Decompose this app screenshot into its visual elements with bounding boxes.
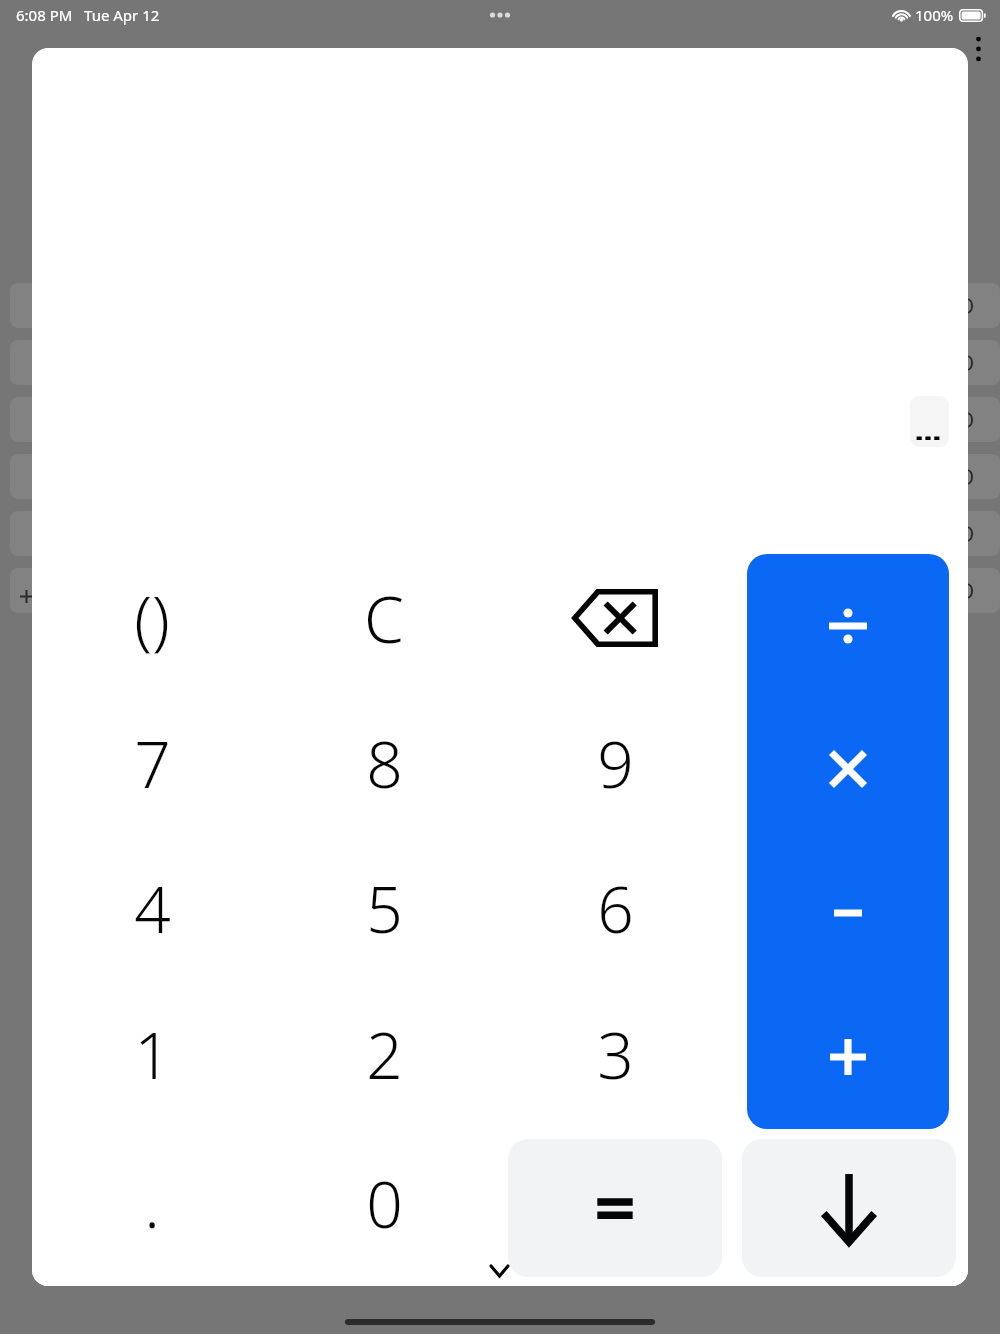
staticText: D bbox=[959, 406, 975, 435]
button[interactable]: . bbox=[90, 1141, 214, 1265]
button[interactable]: Collapse keypad bbox=[477, 1249, 521, 1286]
button[interactable]: 1 bbox=[90, 992, 214, 1116]
staticText: 4 bbox=[134, 865, 171, 952]
button[interactable]: C bbox=[322, 556, 446, 680]
button[interactable]: () bbox=[90, 556, 214, 680]
staticText: 100% bbox=[915, 5, 954, 25]
staticText: 7 bbox=[134, 720, 171, 807]
button[interactable]: 4 bbox=[90, 846, 214, 970]
staticText: C bbox=[364, 575, 404, 662]
staticText: 0 bbox=[366, 1160, 403, 1247]
staticText: 3 bbox=[597, 1011, 634, 1098]
button[interactable]: 0 bbox=[322, 1141, 446, 1265]
staticText: 6:08 PM Tue Apr 12 bbox=[16, 5, 160, 25]
button[interactable]: 5 bbox=[322, 846, 446, 970]
button[interactable]: multiply bbox=[747, 697, 949, 841]
button[interactable]: 6 bbox=[553, 846, 677, 970]
button[interactable]: minus bbox=[747, 841, 949, 985]
staticText: D bbox=[959, 577, 975, 606]
staticText: () bbox=[134, 575, 170, 662]
staticText: 5 bbox=[366, 865, 403, 952]
staticText: D bbox=[959, 349, 975, 378]
button[interactable]: Display options bbox=[910, 396, 949, 447]
staticText: 8 bbox=[366, 720, 403, 807]
staticText: 2 bbox=[366, 1011, 403, 1098]
staticText: 1 bbox=[134, 1011, 171, 1098]
staticText: D bbox=[959, 292, 975, 321]
staticText: 9 bbox=[597, 720, 634, 807]
button[interactable]: Equals bbox=[508, 1139, 722, 1277]
button[interactable]: 9 bbox=[553, 701, 677, 825]
button[interactable]: divide bbox=[747, 554, 949, 697]
staticText: D bbox=[959, 463, 975, 492]
button[interactable]: Next field bbox=[742, 1139, 956, 1277]
button[interactable]: plus bbox=[747, 985, 949, 1129]
button[interactable]: 3 bbox=[553, 992, 677, 1116]
button[interactable]: 2 bbox=[322, 992, 446, 1116]
staticText: . bbox=[144, 1160, 160, 1247]
button[interactable]: More options bbox=[960, 31, 996, 67]
staticText: 6 bbox=[597, 865, 634, 952]
button[interactable]: Backspace bbox=[553, 556, 677, 680]
button[interactable]: 7 bbox=[90, 701, 214, 825]
staticText: D bbox=[959, 520, 975, 549]
button[interactable]: 8 bbox=[322, 701, 446, 825]
